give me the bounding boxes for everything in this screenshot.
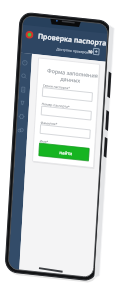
button[interactable]: Проверка паспорта — форма заполнения дан… <box>0 0 123 300</box>
